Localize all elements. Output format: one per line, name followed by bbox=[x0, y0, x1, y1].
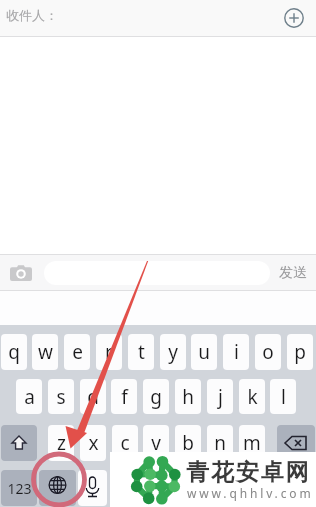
staticText: r bbox=[105, 339, 113, 365]
staticText: k bbox=[247, 384, 258, 410]
staticText: 青花安卓网 bbox=[186, 458, 311, 487]
staticText: x bbox=[88, 430, 99, 456]
staticText: o bbox=[262, 339, 274, 365]
button[interactable]: s bbox=[48, 379, 74, 414]
button[interactable]: Space bbox=[110, 470, 254, 506]
button[interactable]: a bbox=[16, 379, 42, 414]
button[interactable]: Backspace bbox=[277, 425, 315, 461]
button[interactable]: Camera bbox=[10, 265, 32, 281]
button[interactable]: o bbox=[255, 334, 281, 370]
button[interactable]: Add recipient bbox=[284, 8, 304, 28]
staticText: s bbox=[56, 384, 66, 410]
staticText: d bbox=[87, 384, 99, 410]
button[interactable]: u bbox=[191, 334, 217, 370]
button[interactable]: Shift bbox=[1, 425, 37, 461]
button[interactable]: t bbox=[128, 334, 154, 370]
button[interactable]: m bbox=[239, 425, 265, 461]
button[interactable]: k bbox=[239, 379, 265, 414]
button[interactable]: d bbox=[80, 379, 106, 414]
button[interactable]: h bbox=[175, 379, 201, 414]
button[interactable] bbox=[44, 261, 270, 285]
button[interactable]: c bbox=[112, 425, 138, 461]
staticText: z bbox=[57, 430, 66, 456]
button[interactable]: j bbox=[207, 379, 233, 414]
button[interactable]: v bbox=[143, 425, 169, 461]
button[interactable]: p bbox=[287, 334, 313, 370]
button[interactable]: g bbox=[143, 379, 169, 414]
staticText: p bbox=[294, 339, 306, 365]
staticText: w bbox=[38, 339, 53, 365]
staticText: u bbox=[198, 339, 210, 365]
button[interactable]: 123 bbox=[1, 470, 37, 506]
button[interactable]: e bbox=[64, 334, 90, 370]
staticText: a bbox=[24, 384, 35, 410]
staticText: y bbox=[168, 339, 178, 365]
button[interactable]: Voice input bbox=[78, 470, 107, 506]
staticText: l bbox=[281, 384, 286, 410]
staticText: v bbox=[151, 430, 161, 456]
staticText: t bbox=[138, 339, 145, 365]
button[interactable]: f bbox=[111, 379, 137, 414]
button[interactable]: b bbox=[175, 425, 201, 461]
button[interactable]: n bbox=[207, 425, 233, 461]
button[interactable]: q bbox=[1, 334, 27, 370]
button[interactable]: x bbox=[80, 425, 106, 461]
staticText: i bbox=[234, 339, 239, 365]
staticText: h bbox=[182, 384, 194, 410]
button[interactable]: r bbox=[96, 334, 122, 370]
button[interactable]: y bbox=[160, 334, 186, 370]
button[interactable]: w bbox=[32, 334, 58, 370]
button[interactable]: l bbox=[270, 379, 296, 414]
staticText: b bbox=[182, 430, 194, 456]
staticText: n bbox=[214, 430, 226, 456]
button[interactable]: z bbox=[48, 425, 74, 461]
staticText: 收件人： bbox=[6, 7, 58, 23]
button[interactable]: Change keyboard language bbox=[39, 470, 76, 506]
button[interactable]: 发送 bbox=[279, 264, 307, 282]
staticText: 123 bbox=[7, 479, 32, 498]
staticText: f bbox=[121, 384, 128, 410]
staticText: c bbox=[120, 430, 130, 456]
button[interactable]: i bbox=[223, 334, 249, 370]
button[interactable]: Return bbox=[256, 470, 315, 506]
staticText: e bbox=[72, 339, 83, 365]
staticText: q bbox=[8, 339, 20, 365]
staticText: www.qhhlv.com bbox=[187, 485, 314, 501]
staticText: j bbox=[218, 384, 223, 410]
staticText: m bbox=[243, 430, 261, 456]
staticText: g bbox=[150, 384, 162, 410]
